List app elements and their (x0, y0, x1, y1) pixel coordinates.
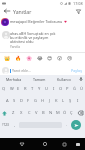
staticText: Q (2, 86, 6, 92)
staticText: mesajapol Beğeniler Todosunu (10, 19, 63, 24)
button[interactable]: Back (2, 6, 12, 16)
button[interactable]: S (11, 95, 18, 107)
staticText: ahas.oBH Sonuçtaki en çok bu etkinlik ve… (10, 31, 57, 44)
button[interactable]: R (22, 83, 29, 95)
staticText: T (31, 86, 34, 92)
button[interactable]: Backspace (75, 107, 85, 119)
staticText: R (24, 86, 27, 92)
staticText: Yanıtla (10, 45, 20, 49)
button[interactable]: D (18, 95, 25, 107)
button[interactable]: O (57, 83, 64, 95)
button[interactable]: Ğ (71, 83, 78, 95)
staticText: K (55, 98, 58, 104)
staticText: 😍 (47, 55, 53, 61)
button[interactable]: K (53, 95, 60, 107)
staticText: A (6, 98, 9, 104)
button[interactable]: X (17, 107, 25, 119)
button[interactable]: Hide keyboard (73, 138, 82, 150)
button[interactable]: Back (17, 138, 27, 150)
button[interactable]: H (39, 95, 46, 107)
button[interactable]: Y (36, 83, 43, 95)
button[interactable]: Q (0, 83, 8, 95)
button[interactable]: A (4, 95, 11, 107)
staticText: I (53, 86, 55, 92)
staticText: H (41, 98, 45, 104)
staticText: Ö (63, 110, 67, 116)
button[interactable]: Shift (0, 107, 9, 119)
button[interactable]: Ü (78, 83, 85, 95)
staticText: Merhaba (6, 77, 22, 82)
button[interactable]: B (40, 107, 47, 119)
button[interactable]: J (46, 95, 53, 107)
button[interactable]: Ş (67, 95, 74, 107)
button[interactable]: W (8, 83, 15, 95)
staticText: S (13, 98, 16, 104)
staticText: Yanıtlar (13, 8, 32, 15)
staticText: O (59, 86, 63, 92)
staticText: . (66, 122, 68, 128)
staticText: J (49, 98, 51, 104)
button[interactable]: Merhaba (0, 75, 27, 83)
staticText: Paylaş (71, 68, 82, 73)
staticText: E (17, 86, 20, 92)
staticText: Ş (69, 98, 72, 104)
button[interactable]: I (50, 83, 57, 95)
button[interactable]: M (54, 107, 61, 119)
button[interactable]: 😂 (35, 54, 45, 62)
staticText: L (62, 98, 65, 104)
staticText: Yanıt ekle... (12, 68, 32, 73)
button[interactable]: F (25, 95, 32, 107)
staticText: 😢 (67, 55, 73, 61)
staticText: 👑 (4, 55, 11, 61)
button[interactable]: Z (9, 107, 17, 119)
button[interactable]: Recents (59, 138, 69, 150)
button[interactable]: Yanıtla (10, 45, 20, 49)
button[interactable]: 😢 (65, 54, 75, 62)
button[interactable]: 😮 (55, 54, 65, 62)
button[interactable]: Ç (68, 107, 75, 119)
button[interactable]: , (10, 119, 19, 131)
staticText: D (20, 98, 23, 104)
staticText: Y (38, 86, 41, 92)
button[interactable]: C (25, 107, 33, 119)
staticText: N (49, 110, 53, 116)
staticText: X (20, 110, 23, 116)
button[interactable]: U (43, 83, 50, 95)
button[interactable]: ?123 (0, 119, 10, 131)
button[interactable]: Send (71, 120, 81, 130)
button[interactable]: Voice input (76, 75, 85, 83)
staticText: Z (12, 110, 15, 116)
staticText: 🌸 (26, 55, 33, 61)
button[interactable]: Kullanıcı (52, 75, 76, 83)
button[interactable]: Filter (73, 6, 83, 16)
staticText: Ü (80, 86, 83, 92)
button[interactable]: Tamam (27, 75, 52, 83)
button[interactable]: Home (40, 138, 50, 150)
button[interactable]: 👑 (2, 54, 13, 62)
staticText: G (34, 98, 37, 104)
button[interactable]: 🔥 (13, 54, 24, 62)
staticText: W (10, 86, 14, 92)
button[interactable]: Ö (61, 107, 68, 119)
staticText: 😂 (37, 55, 43, 61)
button[interactable]: N (47, 107, 54, 119)
button[interactable]: 😍 (45, 54, 55, 62)
button[interactable]: T (29, 83, 36, 95)
button[interactable]: G (32, 95, 39, 107)
staticText: C (28, 110, 31, 116)
button[interactable]: Paylaş (70, 67, 83, 74)
staticText: ?123 (2, 123, 9, 127)
staticText: B (42, 110, 45, 116)
staticText: Ç (70, 110, 73, 116)
button[interactable]: 🌸 (24, 54, 35, 62)
button[interactable]: L (60, 95, 67, 107)
staticText: Tamam (33, 77, 46, 82)
staticText: Ğ (73, 86, 76, 92)
button[interactable]: P (64, 83, 71, 95)
button[interactable]: V (33, 107, 40, 119)
button[interactable]: I (74, 95, 81, 107)
staticText: I (77, 98, 79, 104)
button[interactable]: E (15, 83, 22, 95)
